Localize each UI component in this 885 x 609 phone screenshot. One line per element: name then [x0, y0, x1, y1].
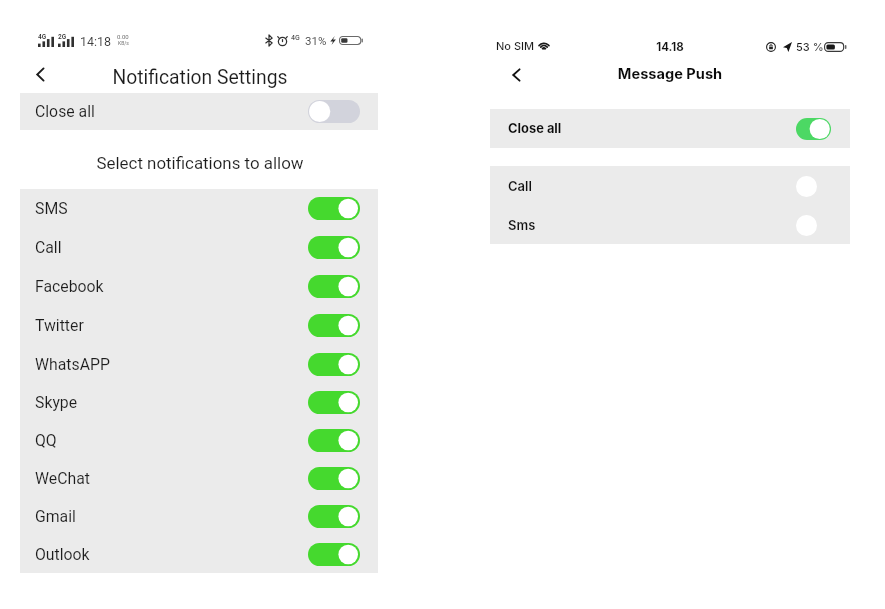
button[interactable]: Toggle on	[308, 275, 360, 298]
staticText: 0.00	[117, 33, 129, 40]
staticText: Message Push	[490, 65, 850, 83]
button[interactable]: Toggle on	[796, 118, 831, 140]
button[interactable]: Outlook	[20, 535, 378, 573]
button[interactable]: Toggle on	[308, 314, 360, 337]
staticText: 4G	[291, 34, 300, 42]
staticText: SMS	[35, 199, 68, 218]
button[interactable]: QQ	[20, 421, 378, 459]
button[interactable]: Twitter	[20, 306, 378, 345]
staticText: Close all	[35, 102, 95, 121]
staticText: 2G	[58, 33, 67, 41]
staticText: Call	[508, 178, 532, 194]
button[interactable]: Toggle off	[796, 175, 831, 197]
button[interactable]: SMS	[20, 189, 378, 228]
staticText: Facebook	[35, 277, 104, 296]
button[interactable]: Call	[490, 166, 850, 205]
staticText: No SIM	[496, 39, 535, 52]
button[interactable]: Toggle off	[308, 100, 360, 123]
staticText: Call	[35, 238, 62, 257]
staticText: Twitter	[35, 316, 84, 335]
staticText: Skype	[35, 393, 78, 412]
staticText: WeChat	[35, 469, 90, 488]
staticText: QQ	[35, 431, 57, 450]
button[interactable]: Back	[505, 67, 531, 93]
button[interactable]: Sms	[490, 205, 850, 244]
button[interactable]: WhatsAPP	[20, 345, 378, 383]
staticText: 14.18	[490, 40, 850, 54]
button[interactable]: Toggle on	[308, 391, 360, 414]
button[interactable]: Facebook	[20, 267, 378, 306]
staticText: Sms	[508, 217, 536, 233]
staticText: Gmail	[35, 507, 76, 526]
button[interactable]: Skype	[20, 383, 378, 421]
button[interactable]: Close all	[20, 93, 378, 130]
button[interactable]: Toggle off	[796, 214, 831, 236]
button[interactable]: Toggle on	[308, 236, 360, 259]
button[interactable]: Toggle on	[308, 543, 360, 566]
staticText: 31%	[305, 34, 327, 47]
button[interactable]: Close all	[490, 109, 850, 148]
staticText: 14:18	[80, 34, 112, 48]
staticText: Outlook	[35, 545, 90, 564]
staticText: 53 %	[796, 40, 824, 53]
button[interactable]: Toggle on	[308, 353, 360, 376]
button[interactable]: Toggle on	[308, 197, 360, 220]
staticText: Notification Settings	[0, 66, 400, 89]
staticText: Select notifications to allow	[0, 153, 400, 173]
button[interactable]: Gmail	[20, 497, 378, 535]
button[interactable]: Toggle on	[308, 505, 360, 528]
button[interactable]: Call	[20, 228, 378, 267]
button[interactable]: Toggle on	[308, 429, 360, 452]
staticText: KB/s	[118, 40, 129, 46]
button[interactable]: Toggle on	[308, 467, 360, 490]
staticText: WhatsAPP	[35, 355, 110, 374]
button[interactable]: Back	[27, 64, 53, 90]
staticText: 4G	[38, 33, 47, 41]
button[interactable]: WeChat	[20, 459, 378, 497]
staticText: Close all	[508, 121, 562, 137]
